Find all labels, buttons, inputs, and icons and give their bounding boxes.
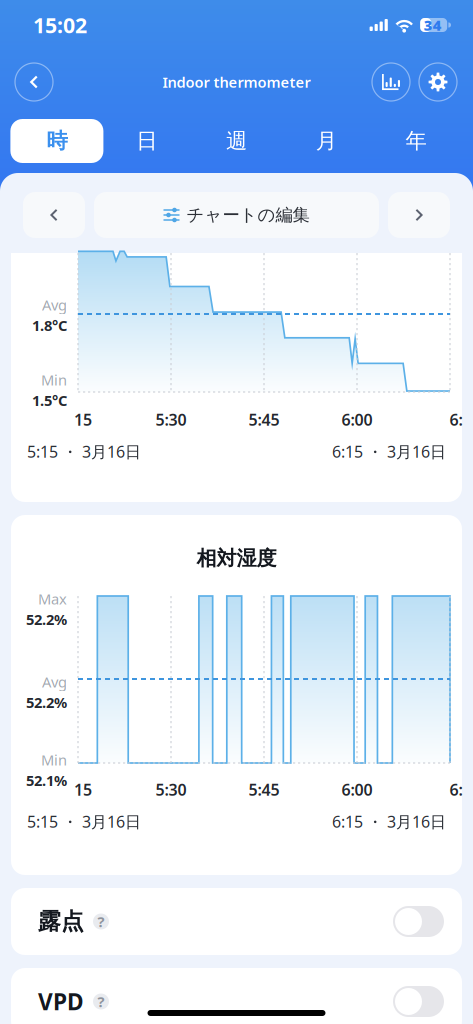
staticText: ? [97,992,104,1011]
staticText: 月 [316,128,337,154]
staticText: 52.1% [26,770,67,790]
button[interactable]: Back [15,63,53,101]
button[interactable]: 露点 [11,888,462,955]
staticText: VPD [38,986,84,1016]
staticText: Min [41,750,67,769]
staticText: 露点 [38,908,84,935]
button[interactable]: チャートの編集 [94,192,379,238]
staticText: 6: [449,409,462,430]
staticText: 15 [74,409,92,430]
staticText: 6: [449,779,462,800]
staticText: 相対湿度 [196,546,276,571]
button[interactable]: VPD [11,968,462,1024]
button[interactable]: Next period [388,192,450,238]
staticText: Avg [42,295,67,314]
staticText: 6:15 ・ 3月16日 [332,441,446,462]
staticText: 5:45 [248,779,279,800]
staticText: Max [38,589,67,608]
staticText: 6:00 [341,779,372,800]
button[interactable]: 週 [192,119,281,163]
staticText: 15 [74,779,92,800]
button[interactable]: Statistics [372,63,410,101]
staticText: 5:30 [155,779,186,800]
staticText: 5:30 [155,409,186,430]
staticText: 6:15 ・ 3月16日 [332,811,446,832]
staticText: ? [97,912,104,931]
staticText: 6:00 [341,409,372,430]
button[interactable]: 年 [371,119,461,163]
staticText: 1.8°C [32,315,67,335]
staticText: 52.2% [26,609,67,629]
staticText: 週 [226,128,247,154]
staticText: 年 [406,128,427,154]
staticText: 5:45 [248,409,279,430]
button[interactable]: 月 [281,119,371,163]
staticText: 1.5°C [32,390,67,410]
staticText: 時 [46,128,67,154]
staticText: 52.2% [26,692,67,712]
staticText: Min [41,370,67,389]
staticText: 5:15 ・ 3月16日 [27,811,141,832]
staticText: Avg [42,672,67,691]
staticText: Indoor thermometer [162,72,310,92]
button[interactable]: Previous period [23,192,85,238]
staticText: チャートの編集 [186,204,309,226]
staticText: 5:15 ・ 3月16日 [27,441,141,462]
button[interactable]: Settings [419,63,457,101]
staticText: 34 [424,15,442,35]
staticText: 15:02 [33,11,87,39]
button[interactable]: 時 [12,119,102,163]
staticText: 日 [136,128,157,154]
button[interactable]: 日 [102,119,192,163]
